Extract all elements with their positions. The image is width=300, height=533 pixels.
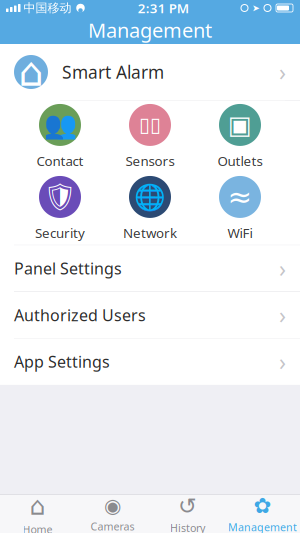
- staticText: Cameras: [90, 519, 134, 533]
- staticText: ◉: [104, 495, 121, 517]
- staticText: Contact: [36, 152, 83, 170]
- button[interactable]: 🛡: [15, 176, 105, 242]
- staticText: ›: [279, 300, 286, 330]
- button[interactable]: ⌂: [0, 495, 75, 533]
- staticText: ↺: [178, 493, 197, 519]
- staticText: ›: [279, 346, 286, 377]
- staticText: History: [170, 521, 205, 533]
- staticText: Home: [22, 522, 52, 533]
- staticText: Panel Settings: [14, 258, 122, 279]
- staticText: WiFi: [227, 224, 252, 242]
- staticText: Sensors: [125, 152, 174, 170]
- staticText: Authorized Users: [14, 304, 146, 326]
- button[interactable]: 🌐: [105, 176, 195, 242]
- staticText: 👥: [43, 110, 76, 140]
- staticText: Security: [35, 224, 85, 242]
- staticText: App Settings: [14, 351, 110, 372]
- staticText: ›: [279, 57, 286, 87]
- staticText: Management: [88, 17, 212, 43]
- staticText: Smart Alarm: [62, 60, 164, 83]
- staticText: Management: [228, 520, 297, 533]
- button[interactable]: ▯▯: [105, 104, 195, 170]
- button[interactable]: 👥: [15, 104, 105, 170]
- button[interactable]: ≈: [195, 176, 285, 242]
- button[interactable]: ◉: [75, 495, 150, 533]
- button[interactable]: Authorized Users: [0, 292, 300, 339]
- staticText: ›: [279, 253, 286, 283]
- staticText: ➤: [252, 3, 260, 13]
- button[interactable]: Panel Settings: [0, 245, 300, 292]
- staticText: 🌐: [134, 182, 166, 211]
- staticText: 中国移动: [23, 1, 71, 15]
- button[interactable]: ↺: [150, 495, 225, 533]
- staticText: 2:31 PM: [138, 0, 189, 17]
- button[interactable]: ⌂: [0, 44, 300, 100]
- staticText: 🛡: [43, 182, 77, 212]
- staticText: ▣: [228, 111, 252, 139]
- button[interactable]: ✿: [225, 495, 300, 533]
- staticText: ▯▯: [139, 114, 161, 136]
- staticText: ⌂: [18, 49, 43, 95]
- button[interactable]: ▣: [195, 104, 285, 170]
- staticText: ⌂: [29, 491, 45, 520]
- staticText: ✿: [253, 494, 271, 518]
- button[interactable]: App Settings: [0, 339, 300, 385]
- staticText: Network: [123, 224, 177, 242]
- staticText: Outlets: [217, 152, 262, 170]
- staticText: ≈: [227, 180, 252, 214]
